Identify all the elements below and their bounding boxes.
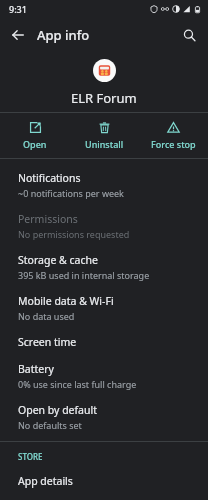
button[interactable]: Open by default	[0, 397, 208, 438]
staticText: No data used	[18, 310, 75, 322]
staticText: 0% use since last full charge	[18, 378, 137, 390]
button[interactable]: Search	[175, 21, 203, 49]
staticText: Force stop	[151, 138, 196, 150]
staticText: 9:31	[9, 3, 27, 15]
button[interactable]: Permissions	[0, 206, 208, 247]
staticText: STORE	[18, 451, 43, 462]
staticText: ~0 notifications per week	[18, 187, 124, 199]
button[interactable]: Notifications	[0, 165, 208, 206]
staticText: Mobile data & Wi-Fi	[18, 294, 114, 308]
button[interactable]: Mobile data & Wi-Fi	[0, 288, 208, 329]
button[interactable]: Screen time	[0, 329, 208, 356]
button[interactable]: Force stop	[139, 113, 208, 158]
button[interactable]: Back	[4, 21, 32, 49]
staticText: Battery	[18, 362, 54, 376]
button[interactable]: App details	[0, 468, 208, 500]
staticText: App details	[18, 474, 73, 488]
staticText: No permissions requested	[18, 228, 130, 240]
button[interactable]: Uninstall	[70, 113, 139, 158]
staticText: Open by default	[18, 403, 98, 417]
button[interactable]: Open	[0, 113, 70, 158]
staticText: Open	[23, 138, 47, 150]
staticText: Screen time	[18, 335, 77, 349]
button[interactable]: Storage & cache	[0, 247, 208, 288]
staticText: Uninstall	[85, 138, 124, 150]
button[interactable]: Battery	[0, 356, 208, 397]
staticText: No defaults set	[18, 419, 82, 431]
staticText: 395 kB used in internal storage	[18, 269, 150, 281]
staticText: Storage & cache	[18, 253, 98, 267]
staticText: Permissions	[18, 212, 78, 226]
staticText: ELR Forum	[71, 89, 137, 107]
staticText: Notifications	[18, 171, 81, 185]
staticText: App info	[37, 26, 90, 44]
